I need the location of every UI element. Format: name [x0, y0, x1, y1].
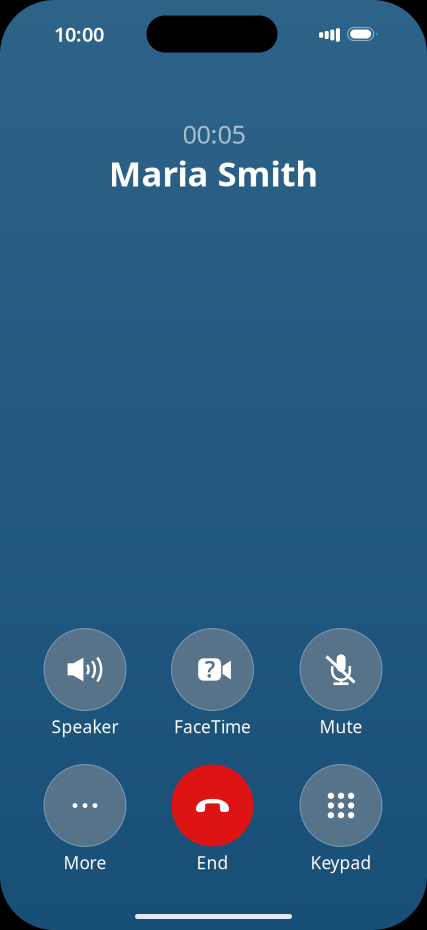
button[interactable]: Speaker: [29, 628, 141, 740]
staticText: FaceTime: [174, 715, 251, 738]
button[interactable]: Mute: [285, 628, 397, 740]
button[interactable]: End: [156, 764, 268, 876]
staticText: Mute: [319, 715, 362, 738]
staticText: More: [63, 851, 106, 874]
staticText: Maria Smith: [108, 150, 318, 196]
button[interactable]: ?: [156, 628, 268, 740]
button[interactable]: Keypad: [285, 764, 397, 876]
staticText: Speaker: [51, 715, 118, 738]
button[interactable]: More: [29, 764, 141, 876]
staticText: 00:05: [182, 117, 245, 151]
staticText: 10:00: [54, 21, 104, 47]
staticText: ?: [205, 654, 215, 684]
staticText: Keypad: [310, 851, 371, 874]
staticText: End: [196, 851, 228, 874]
